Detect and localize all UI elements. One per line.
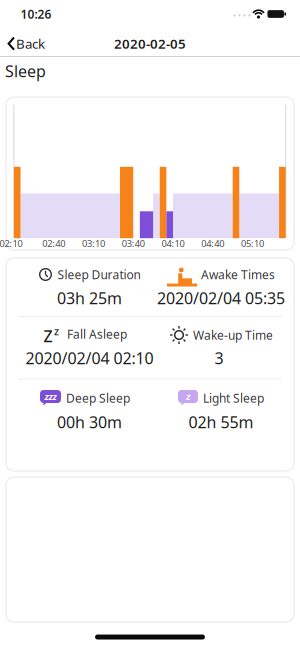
staticText: 02:40 [42,237,65,250]
staticText: 10:26 [20,6,51,22]
staticText: Wake-up Time [193,327,273,343]
staticText: Light Sleep [203,390,264,406]
staticText: 02h 55m [188,411,253,433]
button[interactable]: Back [4,31,48,55]
staticText: 00h 30m [57,411,122,433]
staticText: 2020/02/04 05:35 [157,287,285,309]
staticText: Fall Asleep [67,326,127,342]
staticText: 03:10 [82,237,105,250]
staticText: 03h 25m [57,287,122,309]
staticText: 3 [214,347,223,369]
staticText: zzz [44,390,56,403]
staticText: 2020/02/04 02:10 [25,347,153,369]
staticText: z [54,324,59,338]
staticText: z [186,390,190,403]
staticText: 2020-02-05 [114,35,186,52]
staticText: 04:40 [201,237,224,250]
staticText: 03:40 [122,237,145,250]
staticText: Back [16,35,45,52]
staticText: Awake Times [201,266,275,282]
staticText: Sleep Duration [57,266,140,282]
staticText: 04:10 [161,237,184,250]
staticText: Z [43,325,52,347]
staticText: 02:10 [0,237,22,250]
staticText: 05:10 [241,237,264,250]
staticText: Sleep [5,60,46,82]
staticText: Deep Sleep [66,390,130,406]
